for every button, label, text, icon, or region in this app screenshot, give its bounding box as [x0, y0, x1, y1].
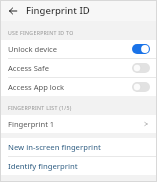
button[interactable]: Identify fingerprint: [0, 157, 157, 175]
button[interactable]: Fingerprint 1: [0, 115, 157, 133]
button[interactable]: Access App lock: [0, 78, 157, 96]
staticText: Identify fingerprint: [8, 161, 78, 171]
button[interactable]: Access Safe: [0, 59, 157, 77]
staticText: Fingerprint ID: [26, 4, 90, 17]
staticText: Access App lock: [8, 82, 132, 92]
staticText: USE FINGERPRINT ID TO: [8, 29, 74, 36]
staticText: Fingerprint 1: [8, 119, 143, 129]
staticText: Access Safe: [8, 63, 132, 73]
button[interactable]: Unlock device: [0, 40, 157, 58]
staticText: New in-screen fingerprint: [8, 142, 101, 152]
button[interactable]: New in-screen fingerprint: [0, 138, 157, 156]
button[interactable]: Back: [5, 3, 21, 19]
staticText: FINGERPRINT LIST (1/5): [8, 104, 72, 111]
staticText: Unlock device: [8, 44, 132, 54]
